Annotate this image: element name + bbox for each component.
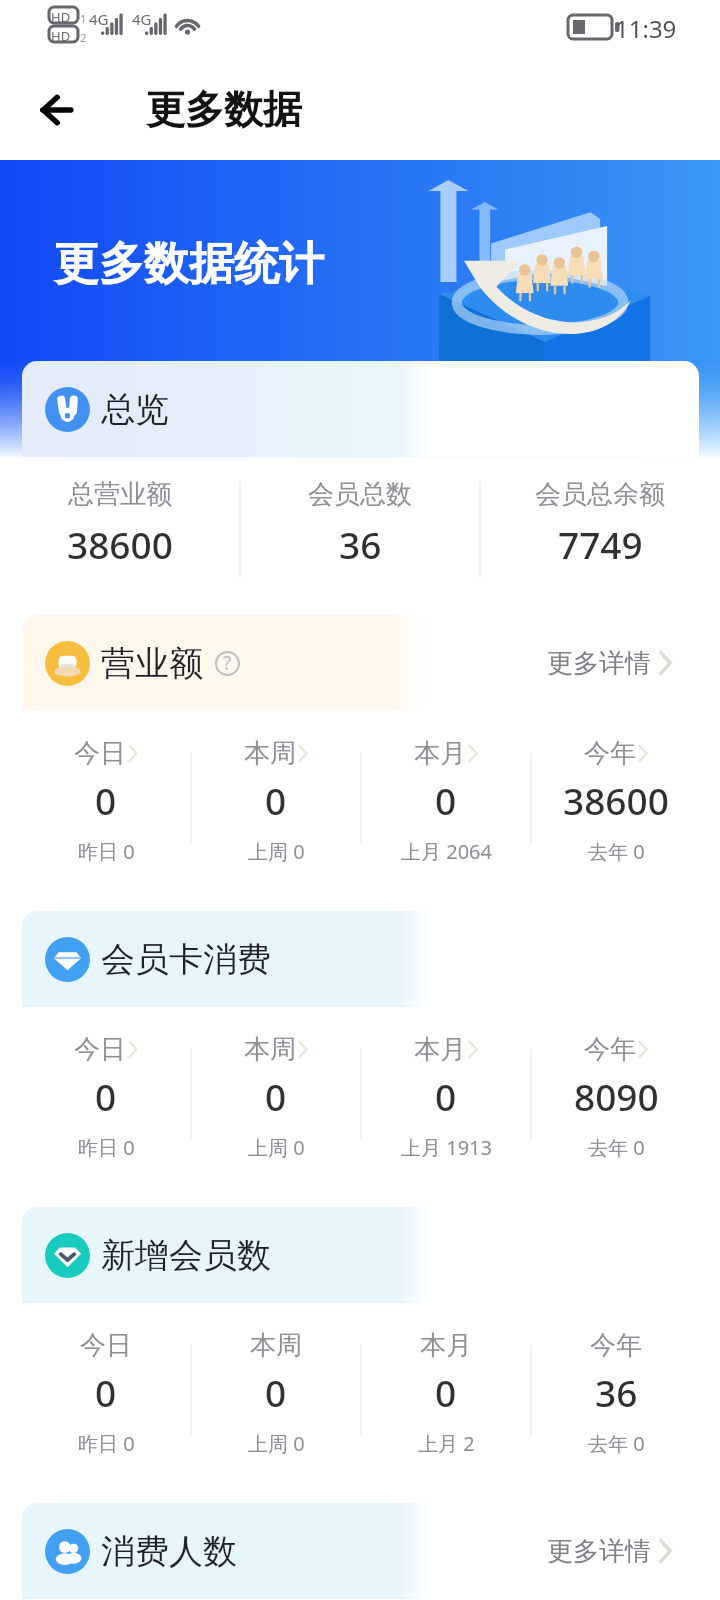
staticText: HD bbox=[51, 27, 71, 45]
staticText: 今日 bbox=[74, 737, 126, 770]
button[interactable]: 今年 bbox=[531, 1007, 701, 1207]
button[interactable]: 会员总数 bbox=[240, 457, 480, 615]
staticText: 更多数据统计 bbox=[54, 236, 324, 293]
staticText: 上周 0 bbox=[248, 838, 305, 865]
staticText: ? bbox=[223, 650, 232, 675]
staticText: 本月 bbox=[414, 1033, 466, 1066]
staticText: 0 bbox=[435, 775, 457, 825]
button[interactable]: 本周 bbox=[191, 711, 361, 911]
staticText: 0 bbox=[265, 1071, 287, 1121]
staticText: 36 bbox=[339, 519, 382, 569]
staticText: HD bbox=[51, 8, 71, 26]
staticText: 1 bbox=[80, 11, 87, 26]
staticText: 本周 bbox=[244, 1033, 296, 1066]
staticText: 总览 bbox=[101, 388, 169, 431]
staticText: 今年 bbox=[590, 1329, 642, 1362]
button[interactable]: 今日 bbox=[21, 1007, 191, 1207]
staticText: 总营业额 bbox=[68, 478, 172, 511]
staticText: 0 bbox=[95, 1071, 117, 1121]
staticText: 更多详情 bbox=[547, 1535, 651, 1568]
button[interactable]: 今日 bbox=[21, 711, 191, 911]
staticText: 0 bbox=[265, 1367, 287, 1417]
button[interactable]: 本月 bbox=[361, 1007, 531, 1207]
staticText: 本周 bbox=[250, 1329, 302, 1362]
staticText: 新增会员数 bbox=[101, 1234, 271, 1277]
button[interactable]: 会员总余额 bbox=[480, 457, 720, 615]
staticText: 7749 bbox=[558, 519, 643, 569]
staticText: 上周 0 bbox=[248, 1134, 305, 1161]
staticText: 更多数据 bbox=[146, 85, 302, 134]
staticText: 今日 bbox=[80, 1329, 132, 1362]
staticText: 本月 bbox=[414, 737, 466, 770]
button[interactable]: 本周 bbox=[191, 1007, 361, 1207]
staticText: 上月 1913 bbox=[401, 1134, 492, 1161]
staticText: 会员卡消费 bbox=[101, 938, 271, 981]
staticText: 今年 bbox=[584, 737, 636, 770]
staticText: 昨日 0 bbox=[78, 1134, 135, 1161]
staticText: 0 bbox=[435, 1367, 457, 1417]
staticText: 更多详情 bbox=[547, 647, 651, 680]
staticText: 去年 0 bbox=[588, 838, 645, 865]
staticText: 昨日 0 bbox=[78, 1430, 135, 1457]
staticText: 去年 0 bbox=[588, 1430, 645, 1457]
button[interactable]: 今年 bbox=[531, 711, 701, 911]
button[interactable]: 更多详情 bbox=[547, 1503, 672, 1599]
staticText: 38600 bbox=[67, 519, 173, 569]
staticText: 8090 bbox=[574, 1071, 659, 1121]
button[interactable]: 本周 bbox=[191, 1303, 361, 1503]
staticText: 4G bbox=[89, 9, 109, 29]
staticText: 上月 2 bbox=[418, 1430, 475, 1457]
button[interactable]: 本月 bbox=[361, 711, 531, 911]
staticText: 本月 bbox=[420, 1329, 472, 1362]
staticText: 本周 bbox=[244, 737, 296, 770]
staticText: 去年 0 bbox=[588, 1134, 645, 1161]
button[interactable]: 更多详情 bbox=[547, 615, 672, 711]
staticText: 4G bbox=[132, 9, 152, 29]
button[interactable]: 总营业额 bbox=[0, 457, 240, 615]
staticText: 36 bbox=[595, 1367, 638, 1417]
staticText: 会员总余额 bbox=[535, 478, 665, 511]
staticText: 2 bbox=[80, 30, 87, 45]
staticText: 0 bbox=[435, 1071, 457, 1121]
staticText: 今日 bbox=[74, 1033, 126, 1066]
button[interactable]: 今日 bbox=[21, 1303, 191, 1503]
staticText: 0 bbox=[265, 775, 287, 825]
staticText: 昨日 0 bbox=[78, 838, 135, 865]
button[interactable]: 今年 bbox=[531, 1303, 701, 1503]
staticText: 0 bbox=[95, 1367, 117, 1417]
button[interactable]: 会员卡消费 bbox=[22, 911, 699, 1007]
button[interactable]: 总览 bbox=[22, 361, 699, 457]
staticText: 38600 bbox=[563, 775, 669, 825]
staticText: 11:39 bbox=[615, 12, 677, 45]
button[interactable]: 本月 bbox=[361, 1303, 531, 1503]
staticText: 上月 2064 bbox=[401, 838, 492, 865]
button[interactable]: 营业额 bbox=[22, 615, 699, 711]
staticText: 会员总数 bbox=[308, 478, 412, 511]
button[interactable]: 新增会员数 bbox=[22, 1207, 699, 1303]
staticText: 今年 bbox=[584, 1033, 636, 1066]
staticText: 营业额 bbox=[101, 642, 203, 685]
button[interactable]: 消费人数 bbox=[22, 1503, 699, 1599]
staticText: 上周 0 bbox=[248, 1430, 305, 1457]
staticText: 消费人数 bbox=[101, 1530, 237, 1573]
staticText: 0 bbox=[95, 775, 117, 825]
button[interactable]: Back bbox=[24, 78, 88, 142]
